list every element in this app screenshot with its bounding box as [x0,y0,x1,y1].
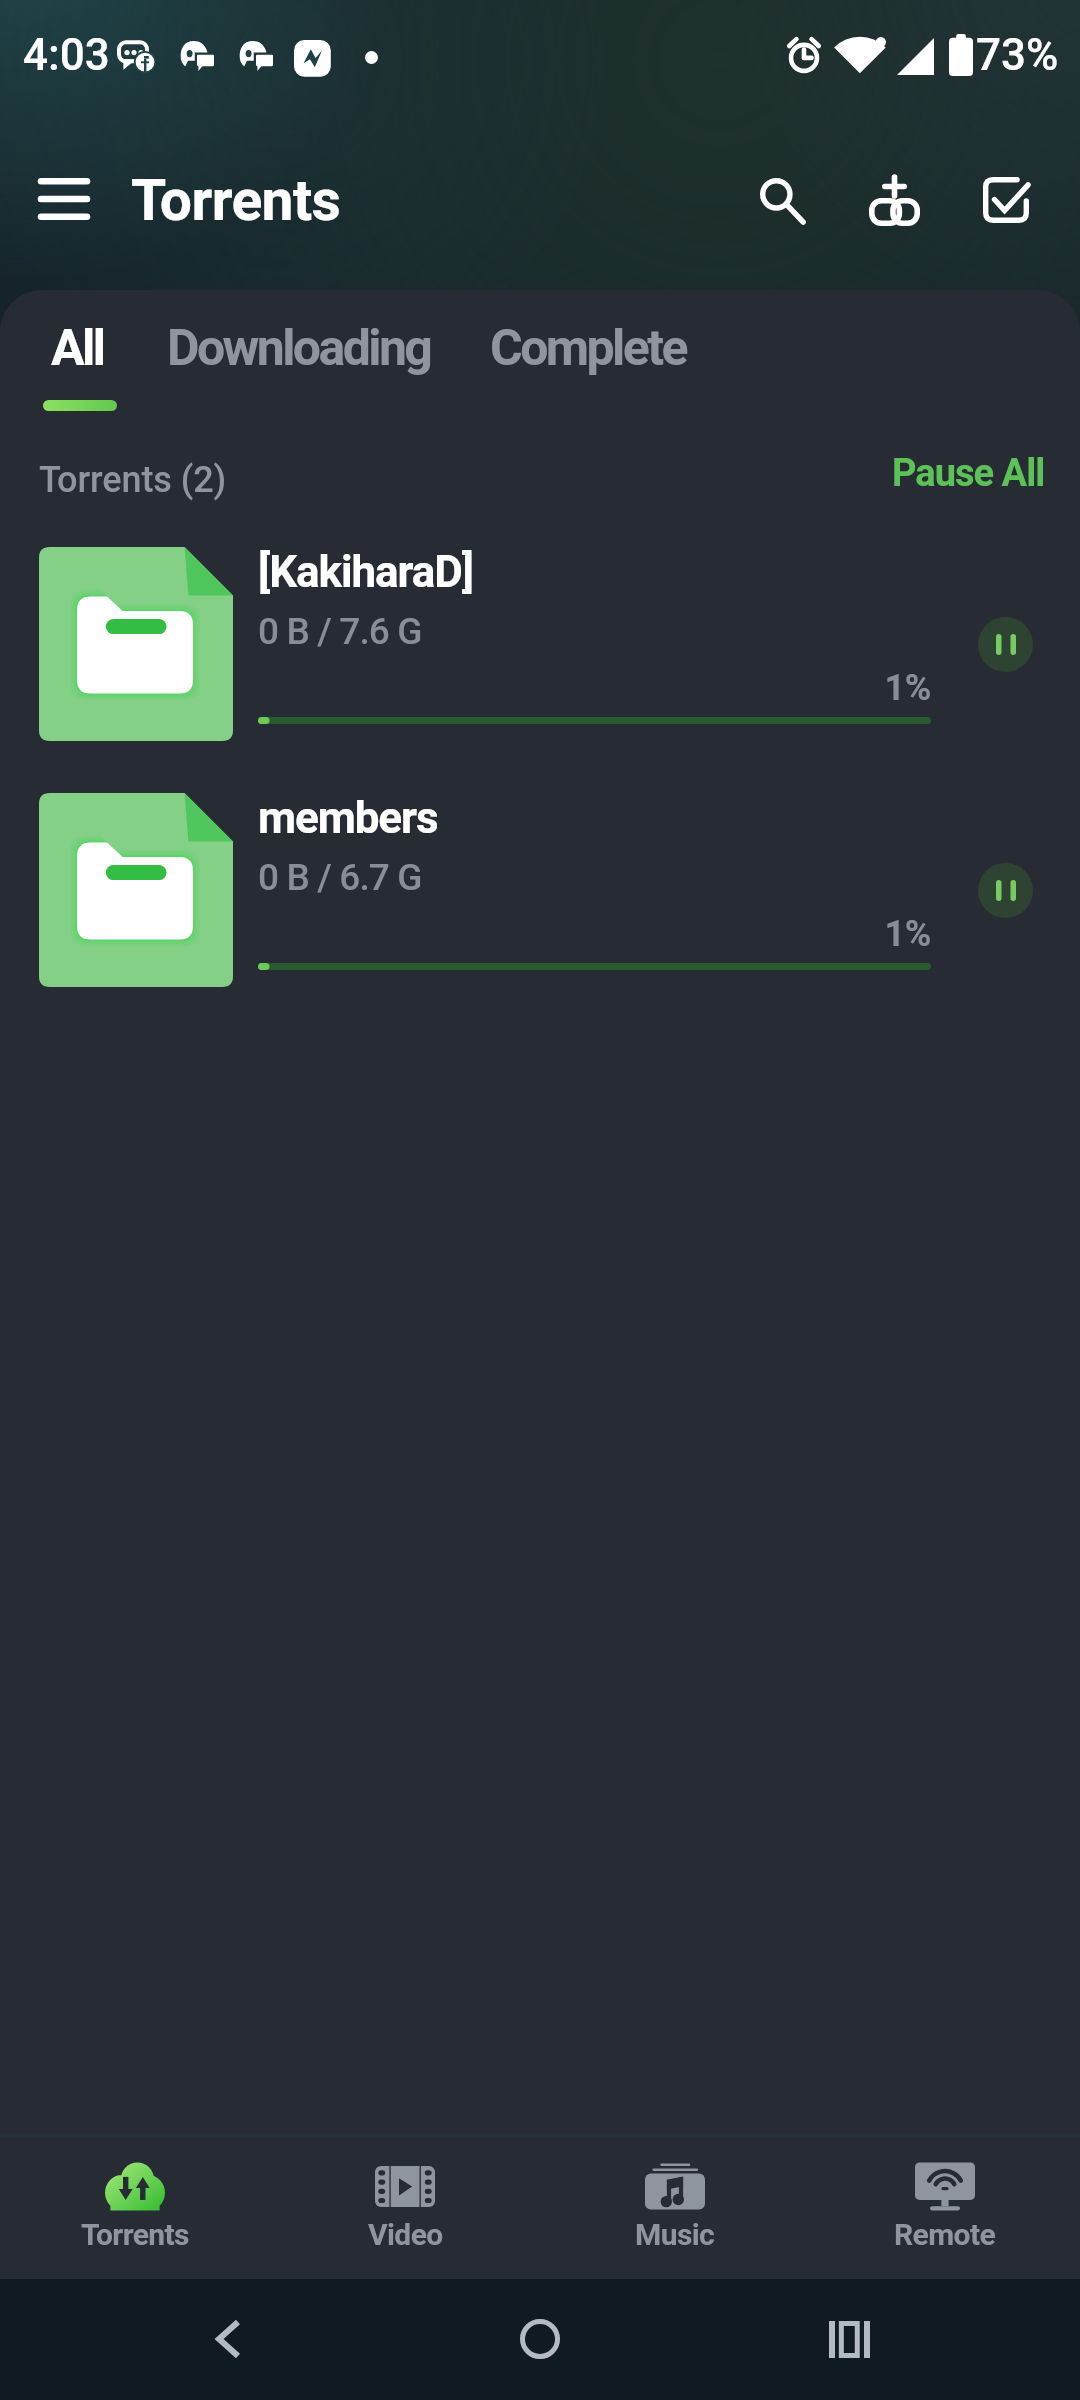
button[interactable]: Home [500,2299,580,2379]
button[interactable]: Torrents [0,2137,270,2279]
staticText: Torrents [131,167,341,234]
staticText: 1% [700,913,931,955]
button[interactable]: All [19,290,136,420]
staticText: 0 B / 6.7 G [258,856,422,899]
staticText: [KakiharaD] [258,546,473,598]
button[interactable]: Downloading [135,290,463,420]
staticText: members [258,792,438,844]
staticText: Remote [894,2217,996,2252]
button[interactable]: Back [188,2299,268,2379]
staticText: 0 B / 7.6 G [258,610,422,653]
staticText: Torrents (2) [39,459,227,501]
button[interactable]: Music [540,2137,810,2279]
button[interactable]: Search [733,151,833,251]
staticText: Music [635,2217,715,2252]
staticText: All [51,319,104,378]
staticText: Downloading [167,319,431,378]
button[interactable]: Pause torrent [978,617,1033,672]
button[interactable]: Video [270,2137,540,2279]
button[interactable]: [KakiharaD] [0,543,1080,748]
staticText: 1% [700,667,931,709]
staticText: Torrents [81,2217,189,2252]
button[interactable]: members [0,789,1080,994]
staticText: Video [368,2217,443,2252]
staticText: Complete [490,319,686,378]
button[interactable]: Remote [810,2137,1080,2279]
staticText: 73% [976,29,1059,81]
button[interactable]: Pause All [874,429,1063,518]
staticText: Pause All [892,451,1045,496]
button[interactable]: Recent apps [809,2299,889,2379]
button[interactable]: Complete [458,290,718,420]
staticText: 4:03 [23,29,110,81]
button[interactable]: Open navigation menu [19,154,109,244]
button[interactable]: Pause torrent [978,863,1033,918]
button[interactable]: Select torrents [956,150,1056,250]
button[interactable]: Add torrent link [844,151,944,251]
